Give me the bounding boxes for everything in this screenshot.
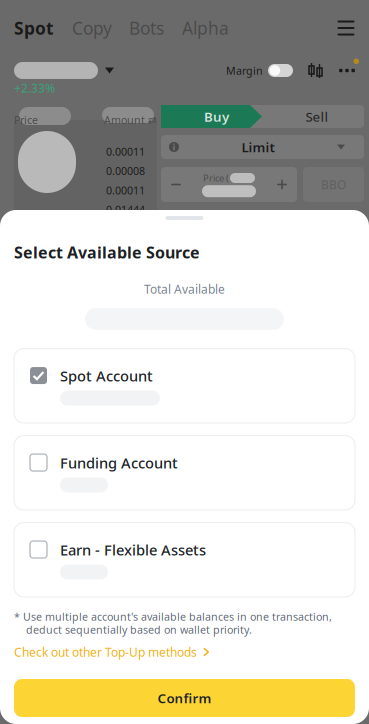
staticText: Copy — [72, 16, 112, 39]
staticText: Spot Account — [60, 366, 153, 386]
staticText: Confirm — [157, 689, 211, 707]
staticText: Price — [14, 113, 38, 127]
staticText: 0.00008 — [106, 164, 145, 178]
staticText: Select Available Source — [14, 242, 200, 263]
button[interactable]: Check out other Top-Up methods — [0, 639, 369, 665]
staticText: Earn - Flexible Assets — [60, 540, 206, 559]
staticText: Amount — [104, 113, 145, 127]
staticText: Price ( — [203, 172, 229, 184]
staticText: 0.00011 — [106, 183, 145, 197]
button[interactable]: Spot Account — [14, 349, 355, 423]
staticText: BBO — [321, 176, 346, 192]
staticText: Bots — [129, 16, 164, 39]
staticText: Sell — [305, 108, 328, 125]
staticText: i — [172, 141, 175, 153]
staticText: Alpha — [182, 16, 229, 39]
staticText: 0.00011 — [106, 145, 145, 159]
staticText: 0.01444 — [106, 202, 145, 217]
staticText: Limit — [241, 138, 274, 156]
button[interactable]: Funding Account — [14, 435, 355, 510]
staticText: Check out other Top-Up methods — [14, 644, 197, 660]
staticText: Margin — [226, 63, 263, 78]
staticText: Buy — [204, 108, 229, 125]
button[interactable]: Earn - Flexible Assets — [14, 522, 355, 597]
staticText: ⇄ — [148, 114, 157, 126]
staticText: * Use multiple account's available balan… — [14, 609, 332, 624]
staticText: deduct sequentially based on wallet prio… — [14, 622, 252, 637]
staticText: Spot — [14, 16, 54, 39]
staticText: Funding Account — [60, 453, 178, 472]
staticText: Total Available — [144, 281, 225, 297]
staticText: +2.33% — [14, 80, 55, 96]
button[interactable]: Confirm — [14, 679, 355, 717]
